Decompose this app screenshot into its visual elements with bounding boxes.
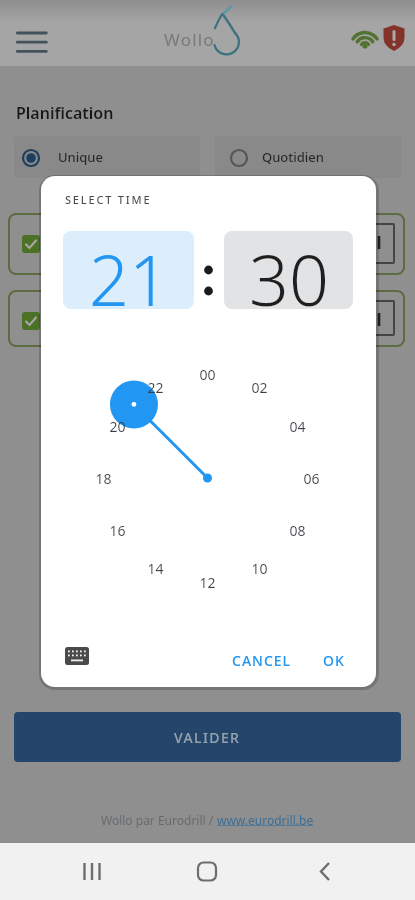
button[interactable]	[182, 855, 232, 889]
staticText: VALIDER	[174, 728, 241, 747]
button[interactable]: CANCEL	[222, 644, 302, 676]
button[interactable]: www.eurodrill.be	[217, 812, 314, 828]
staticText: 16	[109, 521, 126, 540]
button[interactable]	[14, 136, 200, 178]
staticText: 02	[251, 378, 268, 397]
staticText: SELECT TIME	[65, 192, 152, 207]
staticText: CANCEL	[232, 651, 292, 670]
staticText: 30	[249, 231, 329, 309]
button[interactable]: VALIDER	[14, 712, 401, 762]
staticText: www.eurodrill.be	[217, 812, 314, 828]
staticText: Wollo par Eurodrill /	[101, 812, 217, 828]
staticText: 14	[147, 559, 164, 578]
button[interactable]	[70, 855, 120, 889]
staticText: 04	[289, 417, 306, 436]
button[interactable]	[8, 290, 405, 347]
staticText: 10	[251, 559, 268, 578]
button[interactable]	[215, 136, 401, 178]
staticText: 06	[303, 469, 320, 488]
staticText: 00	[199, 365, 216, 384]
staticText: 12	[199, 573, 216, 592]
staticText: Quotidien	[262, 148, 324, 166]
button[interactable]	[12, 26, 56, 58]
staticText: 21	[89, 231, 169, 309]
staticText: Planification	[16, 102, 114, 124]
button[interactable]: OK	[312, 644, 356, 676]
staticText: Wollo	[164, 28, 215, 51]
button[interactable]: 30	[224, 231, 353, 309]
button[interactable]	[58, 640, 96, 672]
staticText: 08	[289, 521, 306, 540]
button[interactable]: 21	[63, 231, 194, 309]
staticText: 18	[95, 469, 112, 488]
button[interactable]	[305, 855, 355, 889]
staticText: Unique	[58, 148, 103, 166]
staticText: 20	[109, 417, 126, 436]
staticText: OK	[323, 651, 345, 670]
button[interactable]	[8, 213, 405, 275]
staticText: 22	[147, 378, 164, 397]
